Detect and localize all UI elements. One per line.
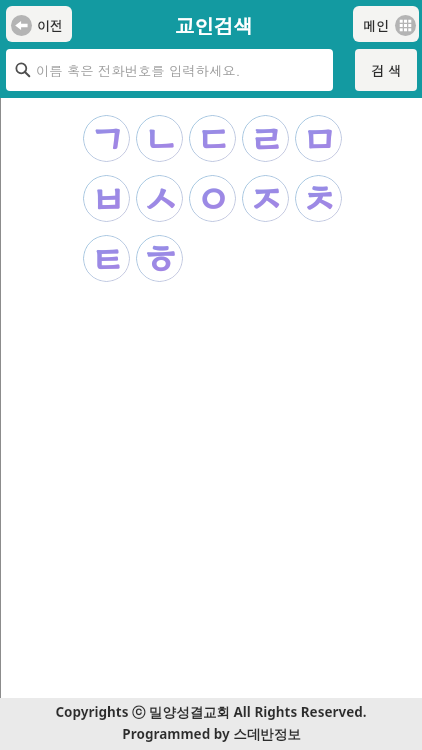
button[interactable]: ㄷ	[189, 115, 236, 162]
button[interactable]: ㅂ	[83, 175, 130, 222]
button[interactable]: 이름 혹은 전화번호를 입력하세요.	[6, 49, 333, 91]
staticText: ㅇ	[194, 175, 232, 215]
button[interactable]: ㅎ	[136, 235, 183, 282]
staticText: 검 색	[371, 61, 402, 79]
staticText: ㅅ	[141, 175, 179, 215]
button[interactable]: ㅈ	[242, 175, 289, 222]
button[interactable]: ㅅ	[136, 175, 183, 222]
staticText: ㄱ	[88, 115, 126, 155]
staticText: Copyrights ⓒ 밀양성결교회 All Rights Reserved.	[55, 703, 367, 721]
button[interactable]: 이전	[6, 6, 72, 42]
staticText: ㅎ	[141, 235, 179, 275]
button[interactable]: ㄹ	[242, 115, 289, 162]
staticText: ㅈ	[247, 175, 285, 215]
staticText: ㅁ	[300, 115, 338, 155]
staticText: ㄹ	[247, 115, 285, 155]
button[interactable]: ㅇ	[189, 175, 236, 222]
staticText: 이름 혹은 전화번호를 입력하세요.	[36, 61, 241, 80]
button[interactable]: ㄱ	[83, 115, 130, 162]
staticText: 이전	[37, 16, 63, 34]
staticText: ㄷ	[194, 115, 232, 155]
staticText: Programmed by 스데반정보	[122, 725, 301, 743]
button[interactable]: ㄴ	[136, 115, 183, 162]
button[interactable]: 메인	[353, 6, 419, 42]
staticText: ㅊ	[300, 175, 338, 215]
staticText: 교인검색	[175, 12, 253, 40]
staticText: ㅂ	[88, 175, 126, 215]
button[interactable]: 검 색	[355, 49, 417, 91]
staticText: ㅌ	[88, 235, 126, 275]
button[interactable]: ㅁ	[295, 115, 342, 162]
button[interactable]: ㅌ	[83, 235, 130, 282]
staticText: 메인	[363, 16, 389, 34]
button[interactable]: ㅊ	[295, 175, 342, 222]
staticText: ㄴ	[141, 115, 179, 155]
